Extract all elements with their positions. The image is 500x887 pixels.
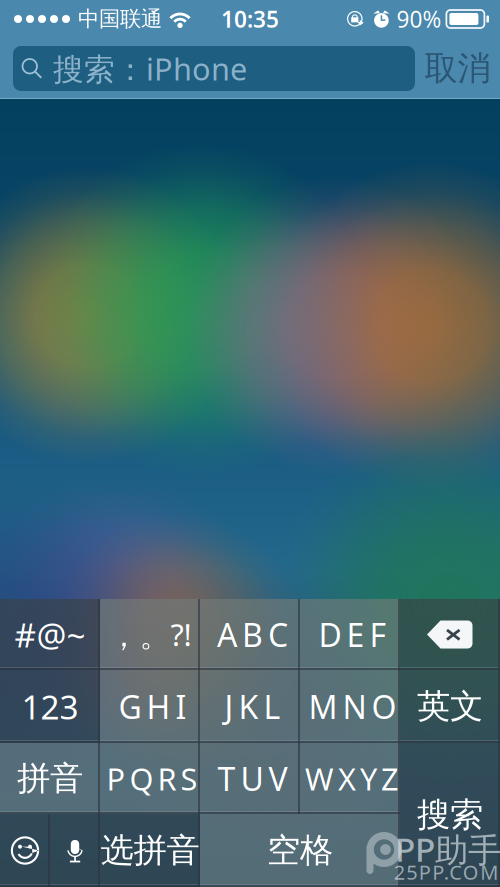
staticText: #@~	[14, 612, 85, 657]
staticText: DEF	[318, 613, 386, 656]
staticText: 拼音	[17, 758, 83, 799]
staticText: PQRS	[106, 758, 197, 799]
button[interactable]: 语音输入	[50, 814, 100, 887]
staticText: 搜索	[417, 794, 483, 835]
button[interactable]: WXYZ	[300, 743, 400, 814]
staticText: ABC	[217, 613, 288, 656]
staticText: 英文	[417, 686, 483, 727]
staticText: WXYZ	[305, 758, 399, 799]
button[interactable]: ABC	[200, 599, 300, 670]
button[interactable]: 取消	[415, 46, 500, 91]
staticText: 90%	[396, 4, 441, 34]
staticText: MNO	[308, 685, 396, 728]
staticText: 搜索：iPhone	[53, 48, 247, 89]
button[interactable]: ，。?!	[100, 599, 200, 670]
staticText: 10:35	[221, 4, 279, 34]
button[interactable]: 搜索：iPhone	[13, 46, 415, 91]
button[interactable]: PQRS	[100, 743, 200, 814]
staticText: JKL	[224, 685, 280, 728]
staticText: 取消	[424, 48, 490, 89]
staticText: 选拼音	[100, 830, 199, 871]
button[interactable]: GHI	[100, 670, 200, 743]
button[interactable]: MNO	[300, 670, 400, 743]
button[interactable]: JKL	[200, 670, 300, 743]
staticText: GHI	[118, 685, 186, 728]
button[interactable]: 选拼音	[100, 814, 200, 887]
staticText: PP助手	[395, 827, 500, 871]
button[interactable]: TUV	[200, 743, 300, 814]
button[interactable]: 英文	[400, 670, 500, 743]
button[interactable]: 空格	[200, 814, 400, 887]
button[interactable]: 搜索	[400, 743, 500, 887]
button[interactable]: 拼音	[0, 743, 100, 814]
staticText: 空格	[267, 830, 333, 871]
button[interactable]: 删除	[400, 599, 500, 670]
staticText: 中国联通	[78, 6, 162, 32]
staticText: TUV	[217, 757, 287, 800]
button[interactable]: DEF	[300, 599, 400, 670]
staticText: 25PP.COM	[394, 859, 498, 885]
button[interactable]: 123	[0, 670, 100, 743]
staticText: ，。?!	[108, 614, 191, 655]
button[interactable]: #@~	[0, 599, 100, 670]
button[interactable]: 表情	[0, 814, 50, 887]
staticText: 123	[21, 684, 78, 729]
